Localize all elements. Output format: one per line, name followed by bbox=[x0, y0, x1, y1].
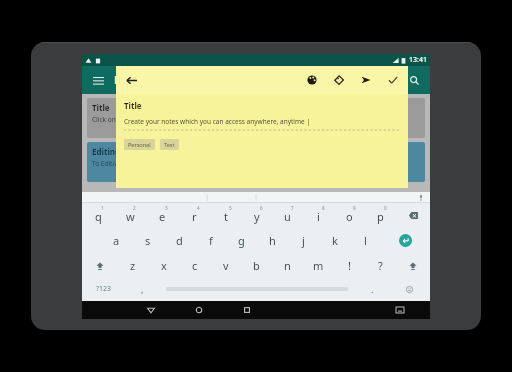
button[interactable]: 7 bbox=[272, 203, 303, 228]
staticText: 1 bbox=[101, 205, 104, 211]
button[interactable]: Voice input bbox=[416, 193, 426, 203]
button[interactable]: Back bbox=[121, 70, 141, 90]
button[interactable]: Test bbox=[160, 139, 179, 150]
staticText: o bbox=[346, 209, 353, 224]
staticText: , bbox=[141, 283, 144, 295]
staticText: w bbox=[126, 209, 135, 224]
staticText: Title bbox=[92, 102, 110, 113]
button[interactable]: Personal bbox=[124, 139, 155, 150]
staticText: 2 bbox=[133, 205, 136, 211]
button[interactable]: d bbox=[164, 228, 195, 253]
staticText: 7 bbox=[291, 205, 294, 211]
button[interactable]: Space bbox=[158, 278, 356, 300]
staticText: p bbox=[377, 209, 384, 224]
staticText: 9 bbox=[353, 205, 356, 211]
button[interactable]: Back bbox=[138, 301, 163, 319]
button[interactable]: x bbox=[148, 253, 179, 278]
button[interactable]: b bbox=[241, 253, 272, 278]
staticText: y bbox=[254, 209, 260, 224]
button[interactable]: Shift bbox=[82, 253, 117, 278]
staticText: 6 bbox=[260, 205, 263, 211]
staticText: Title bbox=[124, 100, 142, 111]
button[interactable]: 2 bbox=[114, 203, 146, 228]
button[interactable]: Emoji bbox=[388, 278, 430, 300]
button[interactable]: 5 bbox=[210, 203, 241, 228]
button[interactable]: c bbox=[179, 253, 210, 278]
button[interactable]: 9 bbox=[334, 203, 365, 228]
button[interactable]: k bbox=[319, 228, 350, 253]
staticText: 13:41 bbox=[409, 55, 427, 65]
staticText: b bbox=[253, 258, 260, 273]
staticText: 0 bbox=[384, 205, 387, 211]
button[interactable]: Open navigation drawer bbox=[88, 70, 108, 90]
staticText: 8 bbox=[322, 205, 325, 211]
staticText: My Notes bbox=[114, 73, 160, 87]
button[interactable]: 4 bbox=[178, 203, 210, 228]
staticText: h bbox=[269, 233, 276, 248]
button[interactable]: Home bbox=[186, 301, 211, 319]
staticText: Editing/Adding bbox=[92, 146, 152, 157]
staticText: ?123 bbox=[96, 284, 112, 294]
button[interactable]: s bbox=[132, 228, 164, 253]
staticText: e bbox=[159, 209, 166, 224]
staticText: d bbox=[176, 233, 183, 248]
staticText: 5 bbox=[229, 205, 232, 211]
staticText: l bbox=[364, 233, 367, 248]
button[interactable]: ?123 bbox=[82, 278, 126, 300]
staticText: 4 bbox=[197, 205, 200, 211]
staticText: i bbox=[317, 209, 320, 224]
button[interactable]: Editing/Adding bbox=[87, 142, 425, 182]
button[interactable]: 6 bbox=[241, 203, 272, 228]
button[interactable]: Share bbox=[356, 70, 376, 90]
button[interactable]: ? bbox=[365, 253, 396, 278]
button[interactable]: n bbox=[272, 253, 303, 278]
staticText: Create your notes which you can access a… bbox=[124, 117, 311, 126]
staticText: Personal bbox=[128, 141, 151, 148]
staticText: . bbox=[371, 283, 374, 295]
staticText: c bbox=[192, 258, 198, 273]
button[interactable]: Add tag bbox=[329, 70, 349, 90]
button[interactable]: Save note bbox=[383, 70, 403, 90]
button[interactable]: 8 bbox=[303, 203, 334, 228]
staticText: u bbox=[284, 209, 291, 224]
button[interactable]: Recent apps bbox=[234, 301, 259, 319]
button[interactable]: Change view bbox=[380, 70, 400, 90]
staticText: v bbox=[223, 258, 229, 273]
staticText: 3 bbox=[165, 205, 168, 211]
button[interactable]: 1 bbox=[82, 203, 114, 228]
staticText: t bbox=[224, 209, 228, 224]
button[interactable]: a bbox=[100, 228, 132, 253]
staticText: x bbox=[161, 258, 167, 273]
button[interactable]: v bbox=[210, 253, 241, 278]
button[interactable]: , bbox=[126, 278, 158, 300]
staticText: j bbox=[302, 233, 305, 248]
button[interactable]: Enter bbox=[381, 228, 430, 253]
button[interactable]: 3 bbox=[146, 203, 178, 228]
staticText: Test bbox=[164, 141, 175, 148]
staticText: a bbox=[113, 233, 120, 248]
button[interactable]: g bbox=[226, 228, 257, 253]
staticText: g bbox=[238, 233, 245, 248]
button[interactable]: Delete bbox=[396, 203, 430, 228]
button[interactable]: f bbox=[195, 228, 226, 253]
button[interactable]: ! bbox=[334, 253, 365, 278]
button[interactable]: Title bbox=[87, 98, 425, 138]
button[interactable]: . bbox=[356, 278, 388, 300]
button[interactable]: z bbox=[117, 253, 148, 278]
button[interactable]: l bbox=[350, 228, 381, 253]
staticText: ? bbox=[378, 258, 383, 273]
button[interactable]: Change colour bbox=[302, 70, 322, 90]
staticText: f bbox=[209, 233, 213, 248]
button[interactable]: Hide keyboard bbox=[385, 301, 415, 319]
staticText: m bbox=[313, 258, 324, 273]
button[interactable]: 0 bbox=[365, 203, 396, 228]
staticText: ! bbox=[348, 258, 351, 273]
staticText: k bbox=[332, 233, 338, 248]
button[interactable]: h bbox=[257, 228, 288, 253]
button[interactable]: j bbox=[288, 228, 319, 253]
staticText: s bbox=[145, 233, 151, 248]
button[interactable]: m bbox=[303, 253, 334, 278]
staticText: r bbox=[192, 209, 197, 224]
button[interactable]: Shift bbox=[396, 253, 430, 278]
button[interactable]: Search bbox=[404, 70, 424, 90]
